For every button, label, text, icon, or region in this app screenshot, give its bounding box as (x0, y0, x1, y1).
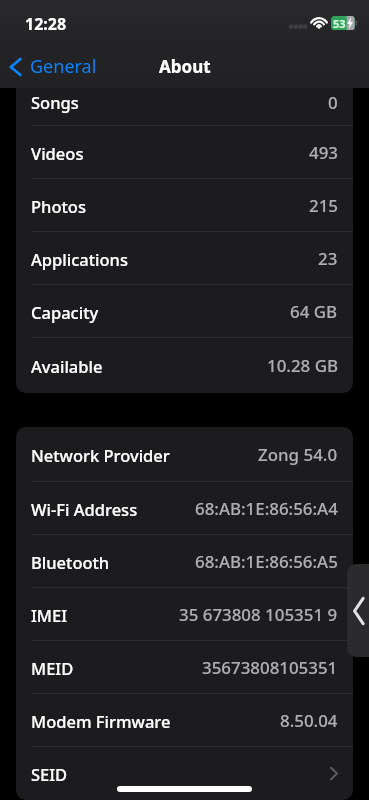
staticText: 215 (309, 194, 338, 217)
button[interactable]: SEID (16, 747, 353, 800)
staticText: 8.50.04 (280, 709, 338, 732)
staticText: 35673808105351 (202, 656, 338, 679)
staticText: 64 GB (290, 300, 338, 323)
staticText: 35 673808 105351 9 (179, 603, 338, 626)
staticText: 53 (333, 16, 346, 30)
staticText: Modem Firmware (31, 710, 171, 732)
staticText: 23 (318, 247, 338, 270)
staticText: Photos (31, 195, 86, 217)
staticText: Available (31, 355, 103, 377)
staticText: General (30, 54, 97, 79)
button[interactable]: IMEI (16, 588, 353, 641)
button[interactable]: Photos (16, 179, 353, 232)
button[interactable]: Available (16, 338, 353, 393)
button[interactable]: Network Provider (16, 427, 353, 482)
staticText: 10.28 GB (267, 354, 338, 377)
button[interactable]: Modem Firmware (16, 694, 353, 747)
staticText: Zong 54.0 (258, 443, 338, 466)
button[interactable]: Videos (16, 126, 353, 179)
staticText: Network Provider (31, 444, 170, 466)
button[interactable]: General (0, 49, 109, 84)
staticText: MEID (31, 657, 74, 679)
button[interactable]: MEID (16, 641, 353, 694)
staticText: Wi-Fi Address (31, 498, 138, 520)
staticText: Bluetooth (31, 551, 110, 573)
button[interactable]: Wi-Fi Address (16, 482, 353, 535)
staticText: 68:AB:1E:86:56:A5 (195, 550, 338, 573)
staticText: Songs (31, 91, 79, 113)
button[interactable]: Open side panel (347, 564, 369, 657)
staticText: Capacity (31, 301, 99, 323)
button[interactable]: Capacity (16, 285, 353, 338)
staticText: About (159, 55, 211, 78)
button[interactable]: Applications (16, 232, 353, 285)
staticText: 12:28 (25, 13, 67, 35)
button[interactable]: Bluetooth (16, 535, 353, 588)
staticText: 493 (309, 141, 338, 164)
staticText: 0 (328, 91, 338, 114)
staticText: Applications (31, 248, 128, 270)
staticText: Videos (31, 142, 84, 164)
staticText: SEID (31, 763, 68, 785)
staticText: 68:AB:1E:86:56:A4 (195, 497, 338, 520)
staticText: IMEI (31, 604, 68, 626)
button[interactable]: Songs (16, 88, 353, 126)
